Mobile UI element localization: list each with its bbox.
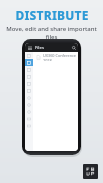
button[interactable]: Rail item 6 [25, 87, 33, 94]
button[interactable]: Rail item 4 [25, 73, 33, 80]
staticText: Files [35, 45, 44, 51]
button[interactable]: Rail item 5 [25, 80, 33, 87]
staticText: Move, edit and share important files [2, 25, 101, 41]
button[interactable]: Open navigation drawer [27, 45, 32, 50]
staticText: UX360 Conference 2018 [43, 53, 78, 61]
button[interactable]: Rail item 2 [25, 59, 33, 66]
staticText: DISTRIBUTE [15, 7, 89, 23]
button[interactable]: Rail item 3 [25, 66, 33, 73]
button[interactable]: Rail item 9 [25, 108, 33, 115]
button[interactable]: UX360 Conference 2018 [33, 53, 78, 61]
button[interactable]: Rail item 8 [25, 101, 33, 108]
button[interactable]: Publisher logo [83, 164, 98, 179]
button[interactable]: Rail item 1 [25, 52, 33, 59]
button[interactable]: Rail item 10 [25, 115, 33, 122]
button[interactable]: Search [71, 45, 76, 50]
button[interactable]: Rail item 11 [25, 122, 33, 129]
button[interactable]: Rail item 7 [25, 94, 33, 101]
